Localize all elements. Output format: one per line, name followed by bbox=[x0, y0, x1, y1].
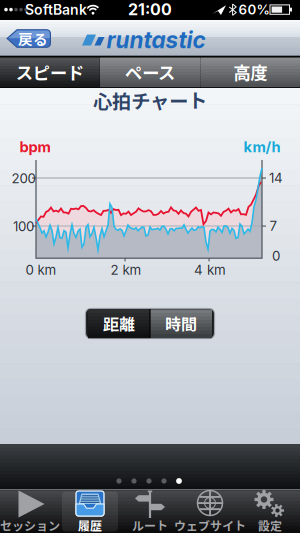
staticText: 100 bbox=[13, 218, 34, 234]
staticText: セッション bbox=[0, 516, 60, 533]
staticText: 7 bbox=[269, 218, 277, 234]
staticText: 時間 bbox=[165, 312, 197, 335]
button[interactable]: 履歴 bbox=[60, 490, 120, 533]
button[interactable]: 時間 bbox=[150, 309, 214, 337]
staticText: 14 bbox=[269, 170, 283, 186]
staticText: km/h bbox=[243, 138, 280, 156]
button[interactable]: 高度 bbox=[200, 57, 300, 86]
button[interactable]: 設定 bbox=[240, 490, 300, 533]
button[interactable]: ルート bbox=[120, 490, 180, 533]
staticText: スピード bbox=[16, 59, 84, 85]
staticText: 高度 bbox=[233, 59, 267, 85]
staticText: 設定 bbox=[258, 516, 282, 533]
staticText: bpm bbox=[19, 138, 50, 156]
staticText: 60% bbox=[238, 1, 269, 18]
staticText: 距離 bbox=[103, 312, 135, 335]
button[interactable]: ウェブサイト bbox=[180, 490, 240, 533]
button[interactable]: 距離 bbox=[86, 309, 150, 337]
staticText: ペース bbox=[125, 59, 175, 85]
button[interactable]: ペース bbox=[100, 57, 200, 86]
staticText: 戻る bbox=[18, 28, 48, 49]
staticText: SoftBank bbox=[25, 1, 87, 18]
staticText: runtastic bbox=[106, 26, 205, 54]
staticText: 履歴 bbox=[78, 516, 102, 533]
button[interactable]: スピード bbox=[0, 57, 100, 86]
staticText: 21:00 bbox=[128, 0, 172, 19]
button[interactable]: Back bbox=[7, 28, 51, 48]
staticText: 0 bbox=[272, 248, 280, 264]
button[interactable]: セッション bbox=[0, 490, 60, 533]
staticText: 0 km bbox=[25, 262, 56, 278]
staticText: 4 km bbox=[194, 262, 226, 278]
staticText: 200 bbox=[11, 170, 35, 186]
staticText: ウェブサイト bbox=[174, 516, 246, 533]
staticText: ルート bbox=[132, 516, 168, 533]
staticText: 心拍チャート bbox=[93, 86, 207, 114]
staticText: 2 km bbox=[110, 262, 141, 278]
